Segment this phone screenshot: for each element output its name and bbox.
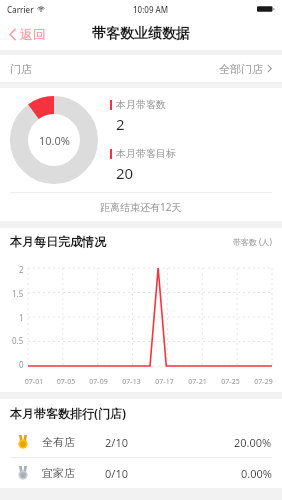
staticText: 本月带客目标 [116,147,176,160]
staticText: 门店 [10,62,32,76]
staticText: 本月带客数排行(门店) [10,405,127,421]
staticText: 全有店 [42,435,75,449]
staticText: 0.00% [241,466,272,481]
other: Rank 1 medal [16,435,30,449]
staticText: 10.0% [39,133,70,148]
staticText: 1.5 [12,288,24,299]
staticText: 本月带客数 [116,98,166,111]
staticText: 07-05 [50,377,82,387]
staticText: 20.00% [234,435,272,450]
staticText: 带客数 (人) [233,236,272,247]
button[interactable]: Rank 1 medal [0,427,282,457]
staticText: 2 [116,114,125,134]
staticText: 0/10 [105,466,128,481]
staticText: 07-29 [247,377,280,387]
staticText: 20 [116,163,134,183]
staticText: 07-17 [148,377,181,387]
button[interactable]: 门店 [0,55,282,82]
staticText: 全部门店 [219,62,263,76]
button[interactable]: Rank 2 medal [0,458,282,488]
other: Rank 2 medal [16,466,30,480]
staticText: 07-25 [214,377,247,387]
staticText: 07-21 [181,377,214,387]
staticText: 本月每日完成情况 [10,234,106,249]
button[interactable]: 返回 [7,23,48,45]
staticText: 距离结束还有12天 [100,200,182,214]
staticText: 2/10 [105,435,128,450]
staticText: 0 [19,359,24,370]
staticText: 10:09 AM [133,4,169,15]
staticText: 07-01 [18,377,50,387]
staticText: 宜家店 [42,466,75,480]
staticText: Carrier [7,4,34,15]
staticText: 0.5 [12,335,24,346]
staticText: 返回 [20,26,46,42]
staticText: 带客数业绩数据 [92,25,190,43]
staticText: 07-13 [115,377,148,387]
staticText: 2 [19,264,24,275]
staticText: 07-09 [82,377,115,387]
staticText: 1 [19,312,24,323]
